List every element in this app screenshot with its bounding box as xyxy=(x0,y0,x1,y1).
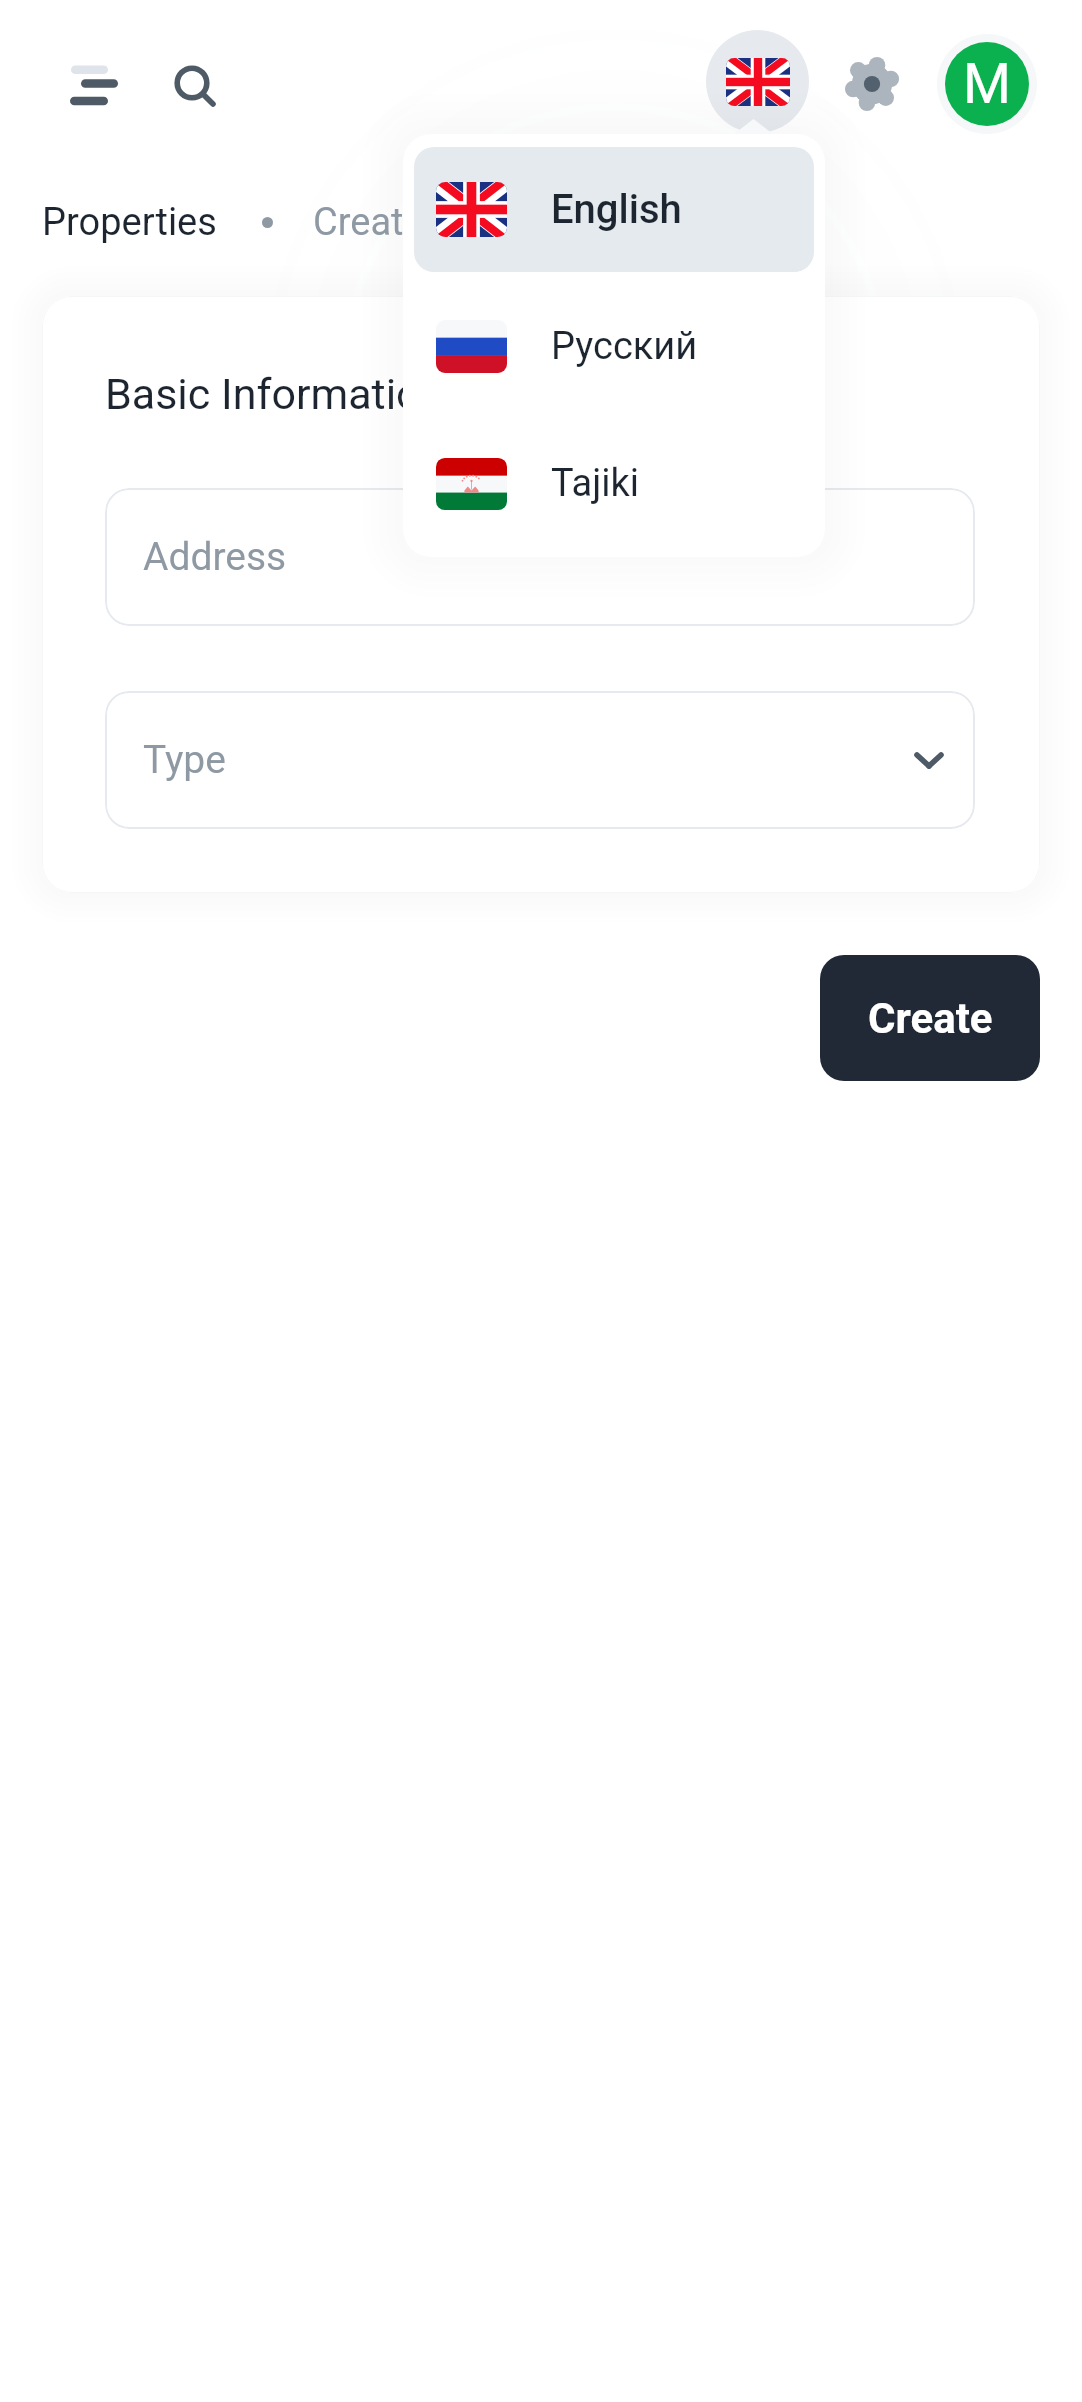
staticText: Create xyxy=(868,994,993,1043)
staticText: Address xyxy=(143,534,287,580)
button[interactable]: Create xyxy=(820,955,1040,1081)
staticText: English xyxy=(551,186,682,233)
button[interactable]: Русский xyxy=(414,284,814,409)
button[interactable]: Search xyxy=(159,51,233,125)
button[interactable]: Profile xyxy=(937,34,1037,134)
button[interactable]: Type xyxy=(105,691,975,829)
button[interactable]: Create xyxy=(311,194,426,251)
staticText: Type xyxy=(143,737,226,783)
button[interactable]: Properties xyxy=(40,194,219,251)
button[interactable]: Language xyxy=(706,30,809,133)
staticText: Basic Information xyxy=(105,369,445,419)
button[interactable]: English xyxy=(414,147,814,272)
button[interactable]: Tajiki xyxy=(414,421,814,546)
button[interactable]: Menu xyxy=(58,48,130,120)
button[interactable]: Settings xyxy=(824,36,920,132)
staticText: M xyxy=(963,52,1012,116)
staticText: Tajiki xyxy=(551,461,640,506)
staticText: Русский xyxy=(551,324,698,369)
button[interactable]: Address xyxy=(105,488,975,626)
